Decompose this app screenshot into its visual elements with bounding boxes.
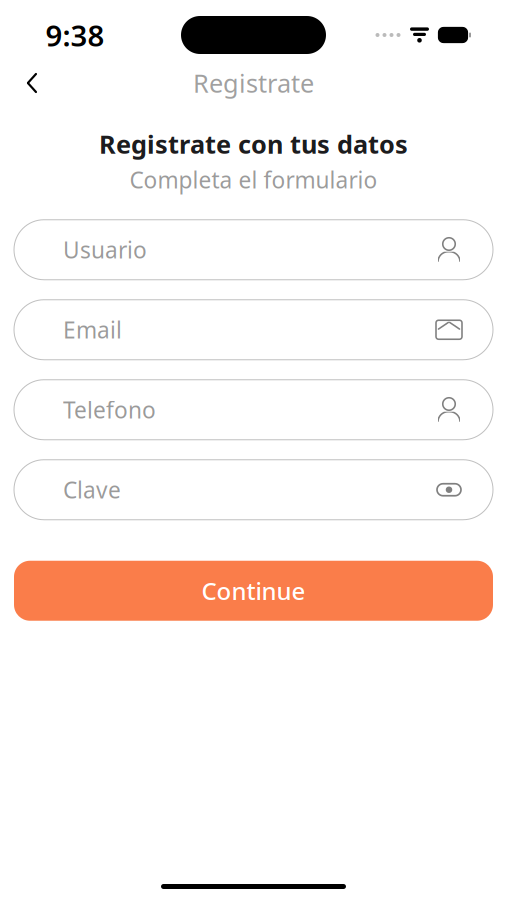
staticText: 9:38 (45, 15, 104, 54)
staticText: Completa el formulario (129, 165, 377, 195)
staticText: Registrate (193, 66, 314, 100)
button[interactable]: Clave (14, 460, 493, 520)
button[interactable]: Continue (14, 561, 493, 621)
staticText: Usuario (63, 235, 147, 265)
staticText: Clave (63, 475, 121, 505)
button[interactable]: Telefono (14, 380, 493, 440)
staticText: Email (63, 315, 122, 345)
button[interactable]: Email (14, 300, 493, 360)
staticText: Registrate con tus datos (99, 127, 408, 161)
button[interactable]: Back (8, 61, 56, 105)
button[interactable]: Usuario (14, 220, 493, 280)
staticText: Telefono (63, 395, 156, 425)
staticText: Continue (201, 575, 305, 607)
